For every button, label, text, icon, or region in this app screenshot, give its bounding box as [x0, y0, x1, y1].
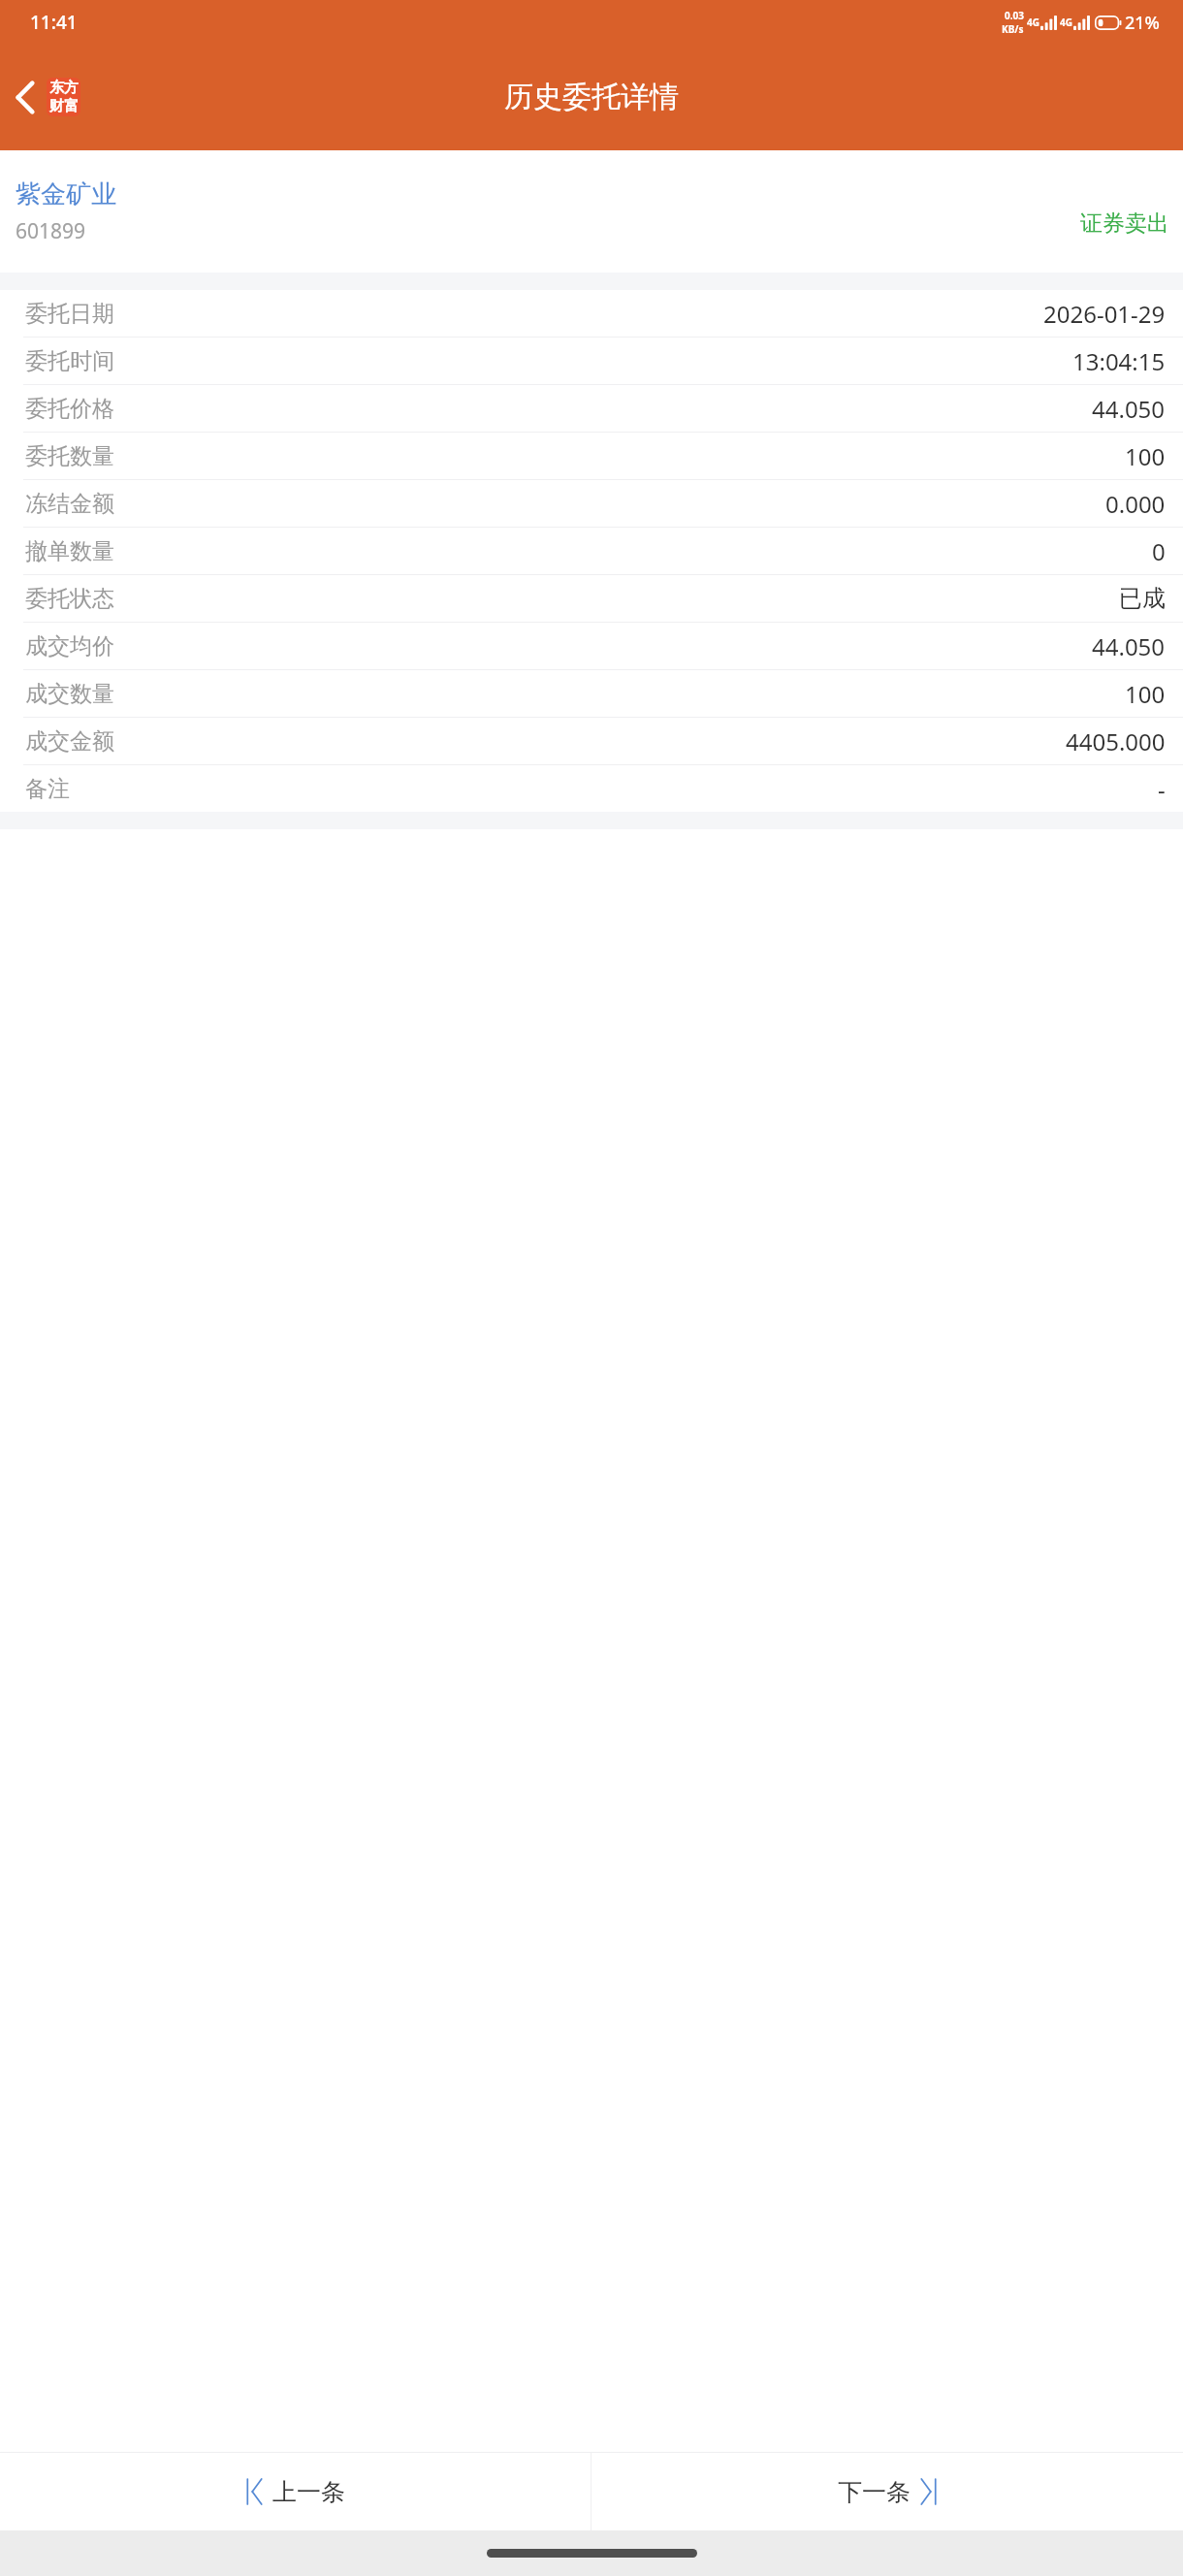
staticText: 100 — [1125, 440, 1166, 472]
staticText: 紫金矿业 — [16, 178, 116, 210]
staticText: 0.000 — [1105, 488, 1166, 520]
staticText: 11:41 — [30, 10, 78, 35]
staticText: 成交均价 — [25, 632, 114, 660]
button[interactable]: 冻结金额 — [0, 480, 1183, 527]
staticText: 2026-01-29 — [1043, 298, 1166, 330]
staticText: KB/s — [1002, 22, 1024, 36]
staticText: 100 — [1125, 678, 1166, 710]
staticText: 已成 — [1119, 584, 1166, 613]
button[interactable]: 委托状态 — [0, 575, 1183, 622]
staticText: 东方 — [49, 79, 79, 97]
button[interactable]: 委托时间 — [0, 338, 1183, 384]
staticText: 财富 — [49, 97, 79, 115]
staticText: 委托价格 — [25, 395, 114, 423]
staticText: 下一条 — [838, 2477, 911, 2507]
staticText: 撤单数量 — [25, 537, 114, 565]
staticText: 委托数量 — [25, 442, 114, 470]
button[interactable]: 委托数量 — [0, 433, 1183, 479]
button[interactable]: 上一条 — [0, 2453, 591, 2530]
staticText: 4405.000 — [1066, 725, 1166, 757]
button[interactable]: 委托价格 — [0, 385, 1183, 432]
staticText: 4G — [1060, 16, 1072, 29]
staticText: 备注 — [25, 775, 70, 803]
staticText: 委托状态 — [25, 585, 114, 613]
staticText: 0 — [1152, 535, 1166, 567]
staticText: 成交金额 — [25, 727, 114, 756]
staticText: 委托时间 — [25, 347, 114, 375]
button[interactable]: 下一条 — [591, 2453, 1183, 2530]
staticText: 601899 — [16, 217, 86, 245]
staticText: 委托日期 — [25, 300, 114, 328]
button[interactable]: 委托日期 — [0, 290, 1183, 337]
staticText: 成交数量 — [25, 680, 114, 708]
button[interactable]: 成交数量 — [0, 670, 1183, 717]
staticText: 0.03 — [1005, 9, 1024, 22]
staticText: - — [1158, 773, 1166, 805]
button[interactable]: 备注 — [0, 765, 1183, 812]
staticText: 上一条 — [272, 2477, 345, 2507]
button[interactable]: 返回 — [0, 70, 90, 124]
button[interactable]: 撤单数量 — [0, 528, 1183, 574]
staticText: 44.050 — [1092, 630, 1166, 662]
button[interactable]: 成交金额 — [0, 718, 1183, 764]
staticText: 13:04:15 — [1072, 345, 1166, 377]
staticText: 44.050 — [1092, 393, 1166, 425]
staticText: 4G — [1027, 16, 1039, 29]
button[interactable]: 成交均价 — [0, 623, 1183, 669]
staticText: 证券卖出 — [1080, 209, 1169, 238]
staticText: 冻结金额 — [25, 490, 114, 518]
staticText: 历史委托详情 — [504, 79, 679, 115]
staticText: 21% — [1125, 11, 1160, 35]
